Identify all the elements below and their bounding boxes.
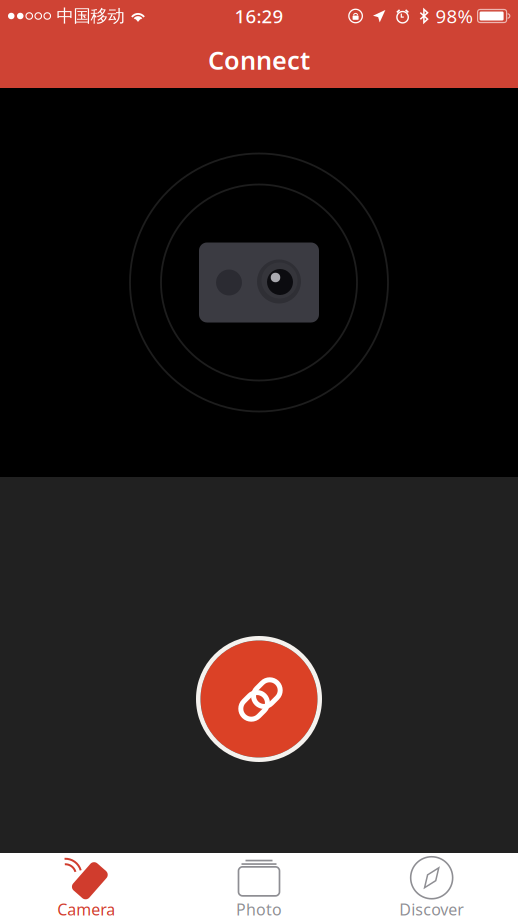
staticText: 中国移动 bbox=[56, 5, 124, 27]
staticText: Photo bbox=[236, 899, 282, 920]
staticText: 98% bbox=[436, 4, 474, 28]
staticText: 16:29 bbox=[234, 4, 283, 28]
staticText: Camera bbox=[57, 899, 115, 920]
button[interactable]: Connect camera bbox=[196, 636, 322, 762]
button[interactable]: Photo bbox=[173, 853, 345, 920]
staticText: Connect bbox=[208, 43, 310, 77]
button[interactable]: Discover bbox=[345, 853, 518, 920]
staticText: Discover bbox=[399, 899, 464, 920]
button[interactable]: Camera bbox=[0, 853, 173, 920]
